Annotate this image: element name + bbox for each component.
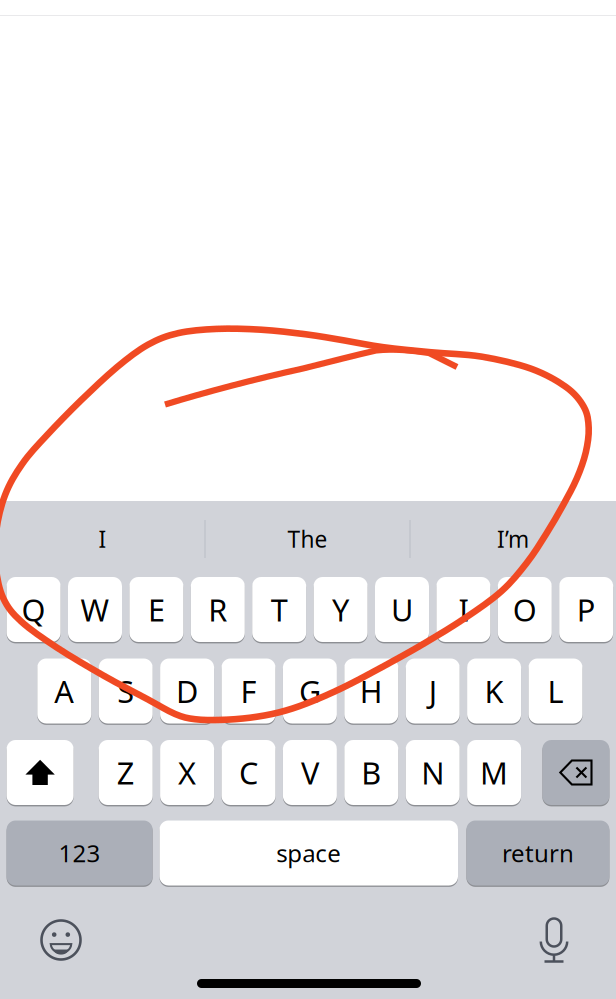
button[interactable]: K <box>467 658 521 723</box>
staticText: 123 <box>59 837 101 869</box>
staticText: Y <box>332 589 349 630</box>
staticText: V <box>301 752 319 793</box>
button[interactable]: P <box>559 577 613 642</box>
staticText: G <box>299 671 321 711</box>
staticText: U <box>391 589 413 630</box>
staticText: C <box>239 752 258 793</box>
button[interactable]: Emoji <box>30 911 92 969</box>
staticText: W <box>80 589 109 630</box>
button[interactable]: B <box>344 740 398 805</box>
button[interactable]: Y <box>314 577 368 642</box>
button[interactable]: F <box>221 658 275 723</box>
button[interactable] <box>542 740 609 805</box>
staticText: J <box>429 671 437 711</box>
button[interactable]: G <box>283 658 337 723</box>
staticText: D <box>176 671 198 711</box>
staticText: H <box>360 671 383 711</box>
staticText: K <box>485 671 504 711</box>
button[interactable]: return <box>466 820 609 885</box>
button[interactable]: R <box>191 577 245 642</box>
button[interactable]: I <box>436 577 490 642</box>
button[interactable]: I <box>0 501 204 577</box>
staticText: I <box>458 589 468 630</box>
button[interactable] <box>7 740 74 805</box>
button[interactable]: O <box>498 577 552 642</box>
button[interactable]: The <box>205 501 409 577</box>
staticText: The <box>287 524 327 554</box>
staticText: P <box>577 589 596 630</box>
staticText: I’m <box>497 524 529 554</box>
staticText: S <box>117 671 134 711</box>
button[interactable]: Q <box>7 577 61 642</box>
button[interactable]: 123 <box>7 820 153 885</box>
button[interactable]: Dictation <box>523 911 585 969</box>
button[interactable]: C <box>221 740 275 805</box>
staticText: A <box>54 671 74 711</box>
staticText: F <box>240 671 256 711</box>
staticText: Z <box>117 752 135 793</box>
staticText: R <box>208 589 227 630</box>
button[interactable]: U <box>375 577 429 642</box>
staticText: X <box>178 752 196 793</box>
button[interactable]: I’m <box>411 501 615 577</box>
staticText: N <box>421 752 444 793</box>
staticText: M <box>480 752 508 793</box>
staticText: space <box>276 837 341 869</box>
button[interactable]: M <box>467 740 521 805</box>
staticText: E <box>148 589 165 630</box>
button[interactable]: A <box>37 658 91 723</box>
staticText: L <box>547 671 563 711</box>
staticText: Q <box>22 589 46 630</box>
staticText: O <box>513 589 537 630</box>
button[interactable]: Z <box>99 740 153 805</box>
staticText: return <box>502 837 574 869</box>
button[interactable]: W <box>68 577 122 642</box>
button[interactable]: N <box>406 740 460 805</box>
staticText: I <box>98 524 106 554</box>
button[interactable]: E <box>129 577 183 642</box>
button[interactable]: X <box>160 740 214 805</box>
button[interactable]: space <box>159 820 458 885</box>
button[interactable]: L <box>528 658 582 723</box>
button[interactable]: H <box>344 658 398 723</box>
staticText: B <box>361 752 381 793</box>
button[interactable]: V <box>283 740 337 805</box>
button[interactable]: J <box>406 658 460 723</box>
staticText: T <box>271 589 288 630</box>
button[interactable]: T <box>252 577 306 642</box>
button[interactable]: D <box>160 658 214 723</box>
button[interactable]: S <box>99 658 153 723</box>
